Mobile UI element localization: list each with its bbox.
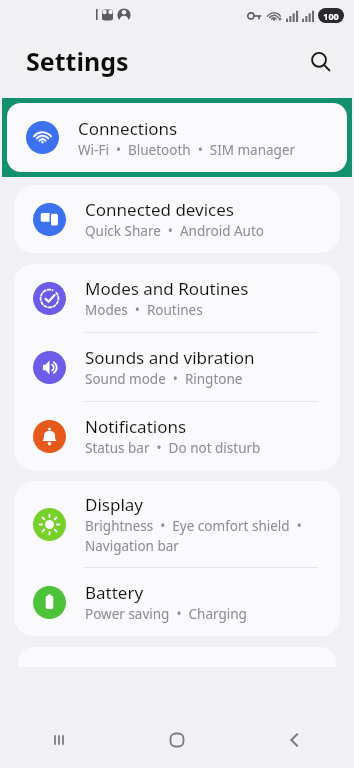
staticText: Battery: [85, 581, 144, 604]
staticText: Connected devices: [85, 198, 235, 221]
button[interactable]: Home: [118, 718, 236, 762]
staticText: Brightness • Eye comfort shield • Naviga…: [85, 517, 326, 555]
staticText: Power saving • Charging: [85, 605, 247, 623]
button[interactable]: Modes and Routines: [14, 264, 340, 332]
button[interactable]: Search: [300, 41, 340, 81]
staticText: Modes and Routines: [85, 277, 249, 300]
staticText: Settings: [26, 44, 129, 78]
staticText: Display: [85, 493, 143, 516]
staticText: 100: [323, 10, 339, 22]
button[interactable]: Display: [14, 481, 340, 567]
staticText: Wi-Fi • Bluetooth • SIM manager: [78, 141, 296, 159]
button[interactable]: Connections: [7, 103, 347, 172]
staticText: Quick Share • Android Auto: [85, 222, 264, 240]
staticText: Modes • Routines: [85, 301, 203, 319]
staticText: Sounds and vibration: [85, 346, 255, 369]
staticText: Status bar • Do not disturb: [85, 439, 261, 457]
staticText: Notifications: [85, 415, 187, 438]
button[interactable]: Battery: [14, 568, 340, 636]
button[interactable]: Notifications: [14, 402, 340, 470]
button[interactable]: Sounds and vibration: [14, 333, 340, 401]
button[interactable]: Recents: [0, 718, 118, 762]
staticText: Sound mode • Ringtone: [85, 370, 243, 388]
button[interactable]: Connected devices: [14, 185, 340, 253]
button[interactable]: Back: [236, 718, 354, 762]
staticText: Connections: [78, 117, 178, 140]
